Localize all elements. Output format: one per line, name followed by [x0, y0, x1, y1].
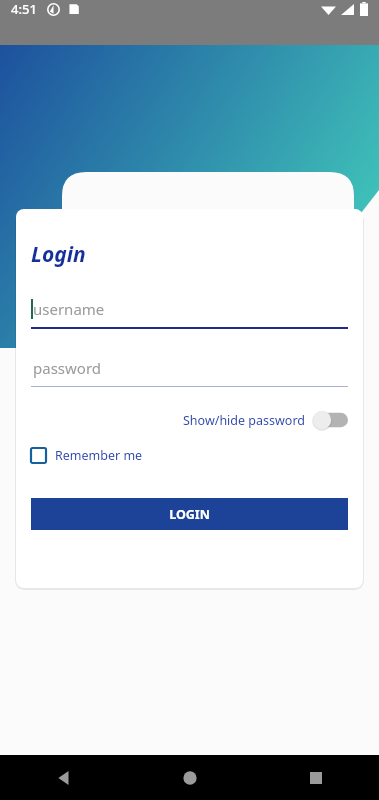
staticText: password: [33, 358, 101, 378]
button[interactable]: password: [31, 358, 348, 387]
staticText: Show/hide password: [183, 412, 305, 429]
button[interactable]: username: [31, 299, 348, 329]
staticText: LOGIN: [169, 506, 210, 523]
staticText: username: [33, 299, 105, 319]
button[interactable]: Recents: [253, 755, 379, 800]
button[interactable]: Show/hide password: [183, 407, 348, 433]
staticText: Login: [31, 240, 86, 269]
staticText: 4:51: [11, 0, 37, 18]
button[interactable]: Remember me: [31, 445, 143, 466]
staticText: Remember me: [55, 447, 143, 464]
button[interactable]: Back: [0, 755, 127, 800]
button[interactable]: Home: [127, 755, 253, 800]
button[interactable]: LOGIN: [31, 498, 348, 530]
